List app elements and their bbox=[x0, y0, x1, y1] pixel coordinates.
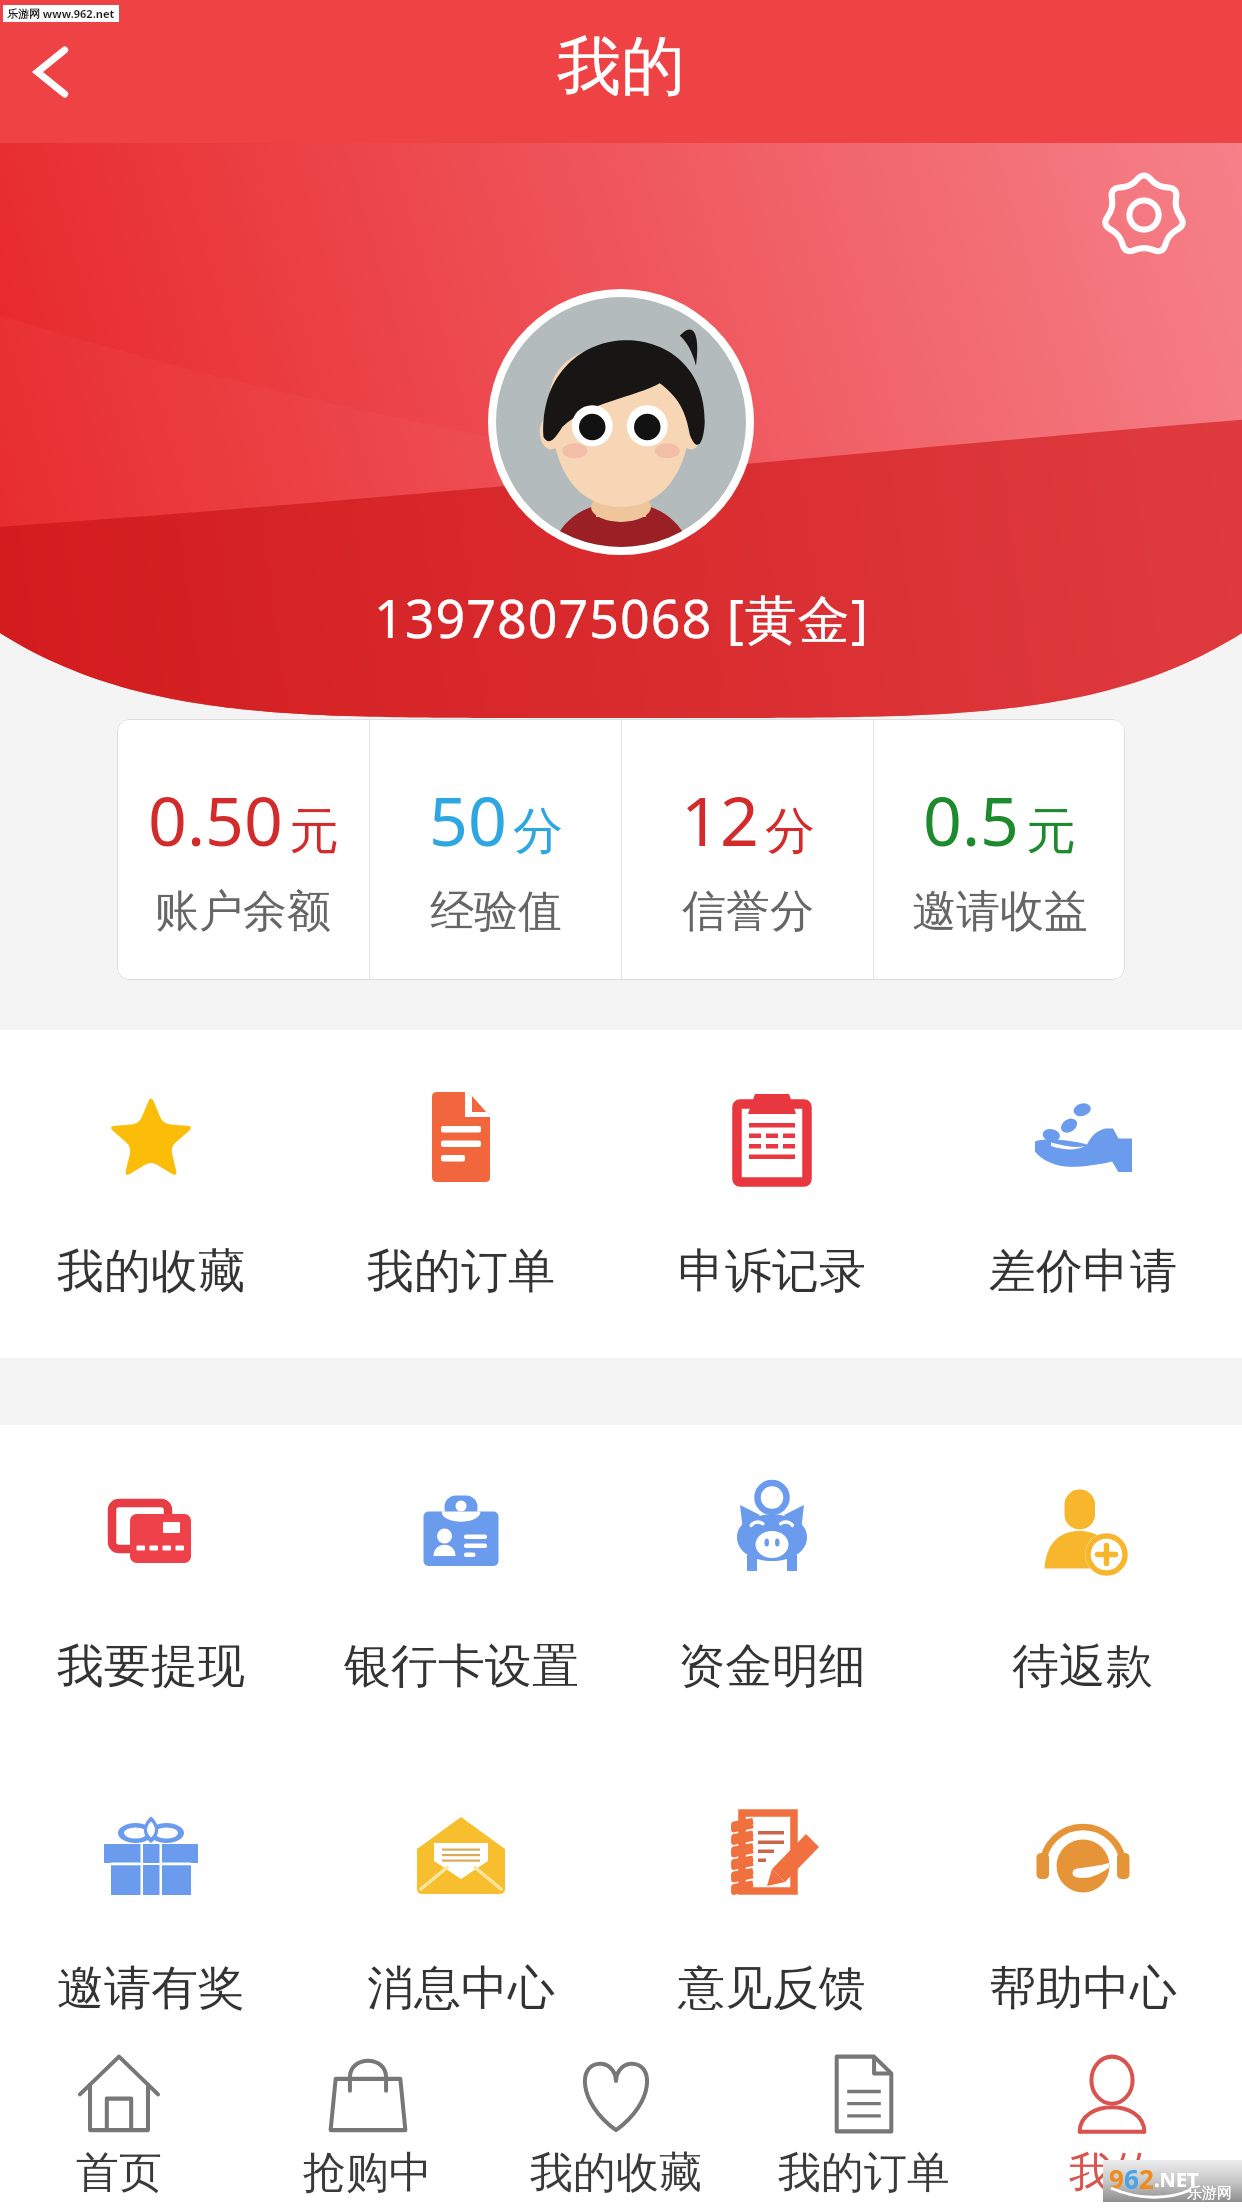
button[interactable]: 我的 bbox=[988, 2048, 1236, 2200]
button[interactable]: 我的订单 bbox=[740, 2048, 988, 2200]
button[interactable]: 0.5 bbox=[874, 719, 1125, 939]
button[interactable]: 我的订单 bbox=[306, 1086, 616, 1301]
staticText: 意见反馈 bbox=[678, 1959, 866, 2018]
staticText: .NET bbox=[1154, 2166, 1199, 2193]
staticText: 邀请收益 bbox=[912, 884, 1088, 939]
button[interactable]: 意见反馈 bbox=[616, 1803, 927, 2018]
button[interactable]: 抢购中 bbox=[243, 2048, 492, 2200]
staticText: 资金明细 bbox=[678, 1637, 866, 1696]
staticText: 银行卡设置 bbox=[344, 1637, 579, 1696]
staticText: 我的收藏 bbox=[57, 1242, 245, 1301]
staticText: 邀请有奖 bbox=[57, 1959, 245, 2018]
button[interactable]: 帮助中心 bbox=[927, 1803, 1238, 2018]
staticText: 账户余额 bbox=[155, 884, 331, 939]
button[interactable]: 差价申请 bbox=[927, 1086, 1238, 1301]
staticText: 元 bbox=[289, 800, 339, 863]
staticText: 经验值 bbox=[430, 884, 562, 939]
staticText: 2 bbox=[1139, 2161, 1154, 2196]
button[interactable]: Avatar bbox=[488, 289, 754, 555]
button[interactable]: 首页 bbox=[0, 2048, 243, 2200]
staticText: 消息中心 bbox=[367, 1959, 555, 2018]
staticText: 0.5 bbox=[923, 773, 1020, 866]
staticText: 我的订单 bbox=[367, 1242, 555, 1301]
staticText: 分 bbox=[765, 800, 815, 863]
button[interactable]: 50 bbox=[370, 719, 621, 939]
staticText: 我的订单 bbox=[778, 2146, 950, 2200]
button[interactable]: 银行卡设置 bbox=[306, 1481, 616, 1696]
button[interactable]: 邀请有奖 bbox=[0, 1803, 306, 2018]
staticText: 待返款 bbox=[1012, 1637, 1153, 1696]
staticText: 6 bbox=[1124, 2161, 1139, 2196]
button[interactable]: 我的收藏 bbox=[0, 1086, 306, 1301]
staticText: 元 bbox=[1026, 800, 1076, 863]
staticText: 我要提现 bbox=[57, 1637, 245, 1696]
staticText: 抢购中 bbox=[303, 2146, 432, 2200]
button[interactable]: 消息中心 bbox=[306, 1803, 616, 2018]
staticText: 首页 bbox=[76, 2146, 162, 2200]
staticText: 我的收藏 bbox=[530, 2146, 702, 2200]
staticText: 50 bbox=[429, 773, 507, 866]
staticText: 分 bbox=[513, 800, 563, 863]
staticText: 差价申请 bbox=[989, 1242, 1177, 1301]
staticText: 12 bbox=[681, 773, 759, 866]
staticText: 13978075068 [黄金] bbox=[374, 582, 869, 653]
staticText: 帮助中心 bbox=[989, 1959, 1177, 2018]
staticText: 信誉分 bbox=[682, 884, 814, 939]
button[interactable]: 12 bbox=[622, 719, 873, 939]
staticText: 9 bbox=[1109, 2161, 1124, 2196]
staticText: 乐游网 bbox=[1187, 2184, 1232, 2203]
staticText: 乐游网 www.962.net bbox=[7, 6, 115, 21]
button[interactable]: 待返款 bbox=[927, 1481, 1238, 1696]
button[interactable]: 资金明细 bbox=[616, 1481, 927, 1696]
staticText: 我的 bbox=[557, 26, 685, 107]
button[interactable]: 我要提现 bbox=[0, 1481, 306, 1696]
button[interactable]: Settings bbox=[1084, 155, 1204, 275]
staticText: 我的 bbox=[1069, 2146, 1155, 2200]
button[interactable]: 申诉记录 bbox=[616, 1086, 927, 1301]
button[interactable]: 我的收藏 bbox=[492, 2048, 740, 2200]
button[interactable]: Back bbox=[0, 0, 110, 143]
staticText: 申诉记录 bbox=[678, 1242, 866, 1301]
button[interactable]: 0.50 bbox=[117, 719, 369, 939]
staticText: 0.50 bbox=[148, 773, 283, 866]
